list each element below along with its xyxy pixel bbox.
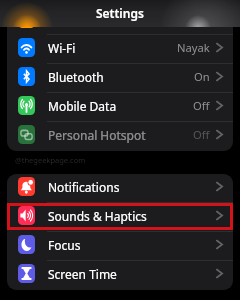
staticText: Focus: [48, 237, 81, 253]
staticText: Sounds & Haptics: [48, 208, 147, 224]
staticText: Mobile Data: [48, 98, 117, 114]
staticText: @thegeekpage.com: [15, 155, 86, 165]
button[interactable]: Focus: [7, 232, 233, 261]
staticText: Off: [193, 127, 210, 142]
button[interactable]: Mobile Data: [7, 93, 233, 122]
staticText: Airplane Mode: [48, 11, 131, 27]
staticText: Off: [193, 98, 210, 113]
staticText: On: [194, 69, 210, 84]
staticText: Screen Time: [48, 266, 117, 282]
staticText: Notifications: [48, 179, 120, 195]
button[interactable]: Screen Time: [7, 261, 233, 290]
button[interactable]: Sounds & Haptics: [7, 203, 233, 232]
staticText: Personal Hotspot: [48, 127, 146, 143]
button[interactable]: Wi-Fi: [7, 35, 233, 64]
button[interactable]: Personal Hotspot: [7, 122, 233, 151]
staticText: Nayak: [177, 40, 210, 55]
button[interactable]: Airplane Mode: [7, 6, 233, 35]
button[interactable]: Bluetooth: [7, 64, 233, 93]
staticText: Bluetooth: [48, 69, 104, 85]
button[interactable]: Notifications: [7, 174, 233, 203]
staticText: Settings: [96, 5, 144, 21]
staticText: Wi-Fi: [48, 40, 76, 56]
button[interactable]: Airplane Mode toggle: [197, 11, 223, 26]
